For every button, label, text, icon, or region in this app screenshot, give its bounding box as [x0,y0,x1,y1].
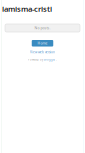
button[interactable]: Home [32,40,53,46]
button[interactable]: Blogger [44,58,55,61]
staticText: View web version [30,50,55,54]
staticText: Powered by [28,58,43,61]
button[interactable]: View web version [30,50,55,54]
staticText: lamisma-cristi [2,3,52,14]
staticText: No posts. [34,26,50,30]
staticText: . [56,58,57,61]
staticText: Home [37,41,47,46]
staticText: Blogger [44,58,55,61]
